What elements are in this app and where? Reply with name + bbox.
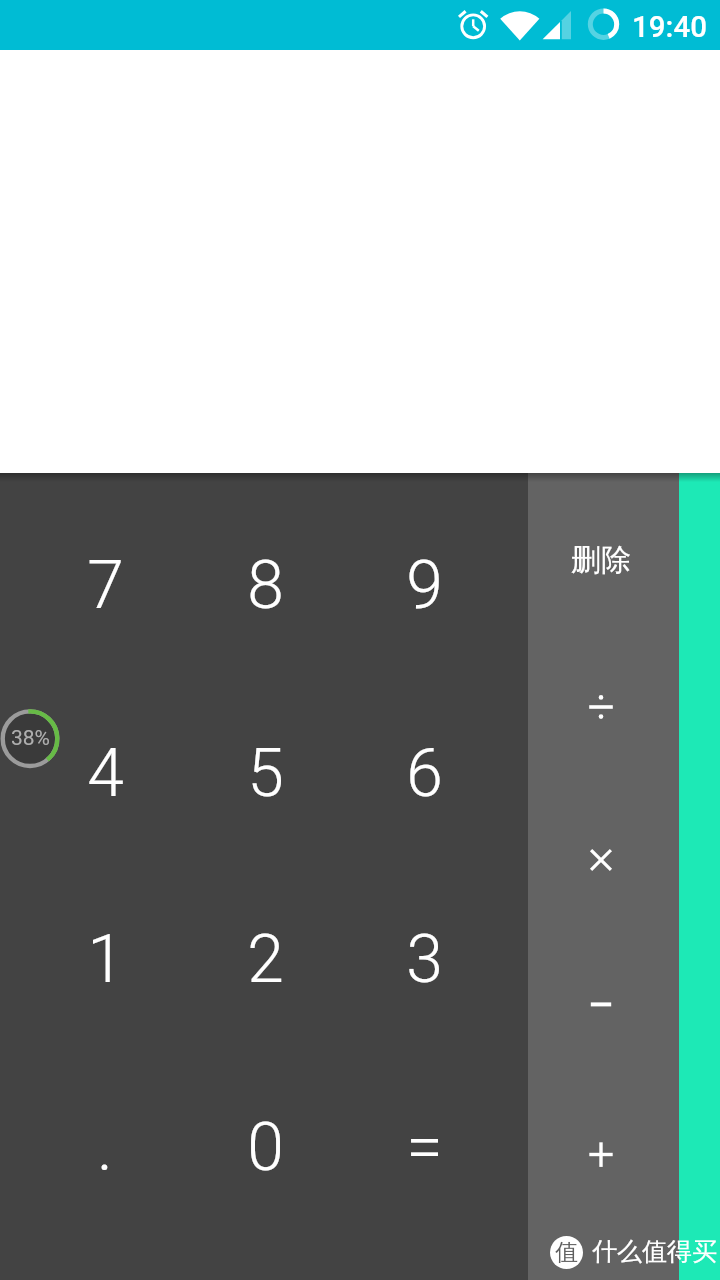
button[interactable]: 6 xyxy=(344,680,504,866)
staticText: 3 xyxy=(406,921,443,998)
staticText: 6 xyxy=(406,735,443,812)
staticText: 8 xyxy=(247,547,284,624)
button[interactable]: 3 xyxy=(344,866,504,1052)
staticText: 9 xyxy=(406,547,443,624)
staticText: 7 xyxy=(87,547,124,624)
button[interactable]: Multiply xyxy=(525,786,676,934)
staticText: 19:40 xyxy=(632,10,707,44)
staticText: 2 xyxy=(247,921,284,998)
button[interactable]: Decimal point xyxy=(25,1054,185,1240)
staticText: = xyxy=(406,1109,443,1186)
staticText: . xyxy=(97,1109,113,1186)
staticText: 38% xyxy=(11,726,50,751)
button[interactable]: 2 xyxy=(185,866,345,1052)
staticText: 删除 xyxy=(571,541,631,579)
button[interactable]: 4 xyxy=(25,680,185,866)
button[interactable]: 删除 xyxy=(525,486,676,634)
staticText: 什么值得买 xyxy=(592,1236,717,1265)
button[interactable]: Divide xyxy=(525,633,676,781)
staticText: 0 xyxy=(247,1109,284,1186)
button[interactable]: Plus xyxy=(525,1080,676,1228)
button[interactable]: 8 xyxy=(185,492,345,678)
button[interactable]: 0 xyxy=(185,1054,345,1240)
staticText: 值 xyxy=(555,1238,578,1267)
button[interactable]: Equals xyxy=(344,1054,504,1240)
staticText: 1 xyxy=(87,921,124,998)
button[interactable]: 7 xyxy=(25,492,185,678)
button[interactable]: Minus xyxy=(525,930,676,1078)
button[interactable]: 5 xyxy=(185,680,345,866)
button[interactable]: 9 xyxy=(344,492,504,678)
staticText: 5 xyxy=(247,735,284,812)
button[interactable]: 1 xyxy=(25,866,185,1052)
staticText: 4 xyxy=(87,735,124,812)
